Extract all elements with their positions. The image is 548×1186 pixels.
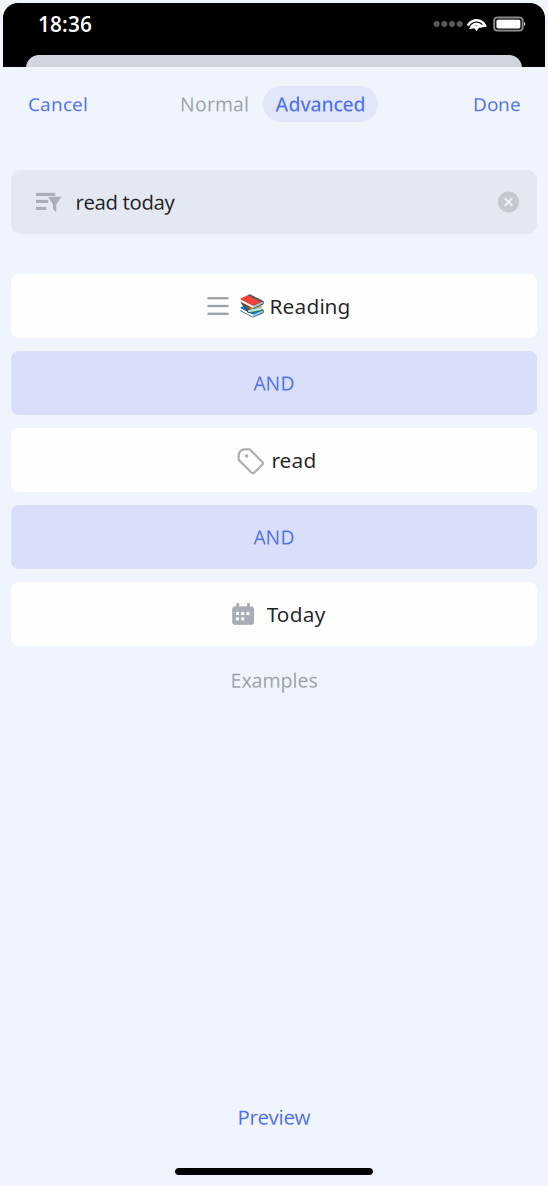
button[interactable]: Preview — [237, 1095, 310, 1139]
button[interactable]: Cancel — [28, 82, 88, 126]
button[interactable]: 📚 — [11, 274, 537, 338]
button[interactable]: Normal — [148, 86, 263, 122]
button[interactable]: Clear search text — [498, 191, 519, 212]
staticText: Examples — [230, 667, 317, 693]
button[interactable]: Done — [473, 82, 521, 126]
staticText: Done — [473, 91, 521, 117]
staticText: Cancel — [28, 91, 88, 117]
staticText: Preview — [237, 1103, 310, 1131]
staticText: read today — [75, 188, 174, 216]
button[interactable]: AND — [11, 505, 537, 569]
staticText: 📚 — [238, 293, 265, 318]
button[interactable]: read — [11, 428, 537, 492]
button[interactable]: Advanced — [263, 86, 378, 122]
button[interactable]: AND — [11, 351, 537, 415]
staticText: AND — [253, 370, 294, 396]
staticText: Reading — [269, 292, 350, 320]
staticText: Normal — [180, 91, 249, 117]
staticText: read — [272, 446, 317, 474]
button[interactable]: Today — [11, 582, 537, 646]
staticText: 18:36 — [38, 10, 92, 38]
staticText: Today — [267, 600, 326, 628]
staticText: Advanced — [275, 91, 365, 117]
staticText: AND — [253, 524, 294, 550]
